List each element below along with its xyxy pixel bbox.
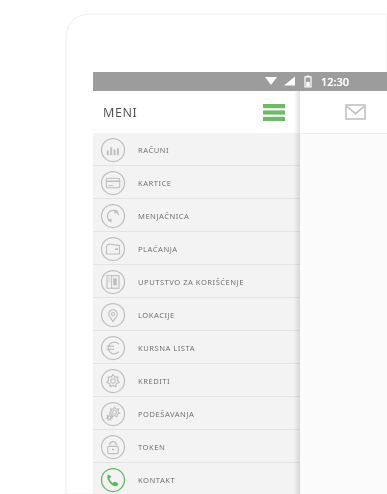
staticText: LOKACIJE	[138, 310, 175, 320]
staticText: 12:30	[321, 74, 350, 89]
staticText: UPUTSTVO ZA KORIŠĆENJE	[138, 277, 244, 287]
staticText: KREDITI	[138, 376, 171, 386]
button[interactable]: KARTICE	[93, 166, 300, 199]
staticText: MENJAČNICA	[138, 211, 190, 221]
button[interactable]: Open menu	[259, 97, 289, 127]
button[interactable]: KREDITI	[93, 364, 300, 397]
button[interactable]: KURSNA LISTA	[93, 331, 300, 364]
button[interactable]: PLAĆANJA	[93, 232, 300, 265]
button[interactable]: KONTAKT	[93, 463, 300, 494]
button[interactable]: PODEŠAVANJA	[93, 397, 300, 430]
staticText: TOKEN	[138, 442, 166, 452]
staticText: KARTICE	[138, 178, 172, 188]
button[interactable]: LOKACIJE	[93, 298, 300, 331]
button[interactable]: MENJAČNICA	[93, 199, 300, 232]
button[interactable]: Messages	[341, 98, 369, 126]
button[interactable]: UPUTSTVO ZA KORIŠĆENJE	[93, 265, 300, 298]
staticText: KURSNA LISTA	[138, 343, 196, 353]
staticText: PODEŠAVANJA	[138, 409, 195, 419]
staticText: RAČUNI	[138, 145, 170, 155]
staticText: MENI	[103, 104, 138, 121]
button[interactable]: TOKEN	[93, 430, 300, 463]
button[interactable]: RAČUNI	[93, 133, 300, 166]
staticText: KONTAKT	[138, 475, 176, 485]
staticText: PLAĆANJA	[138, 244, 178, 254]
